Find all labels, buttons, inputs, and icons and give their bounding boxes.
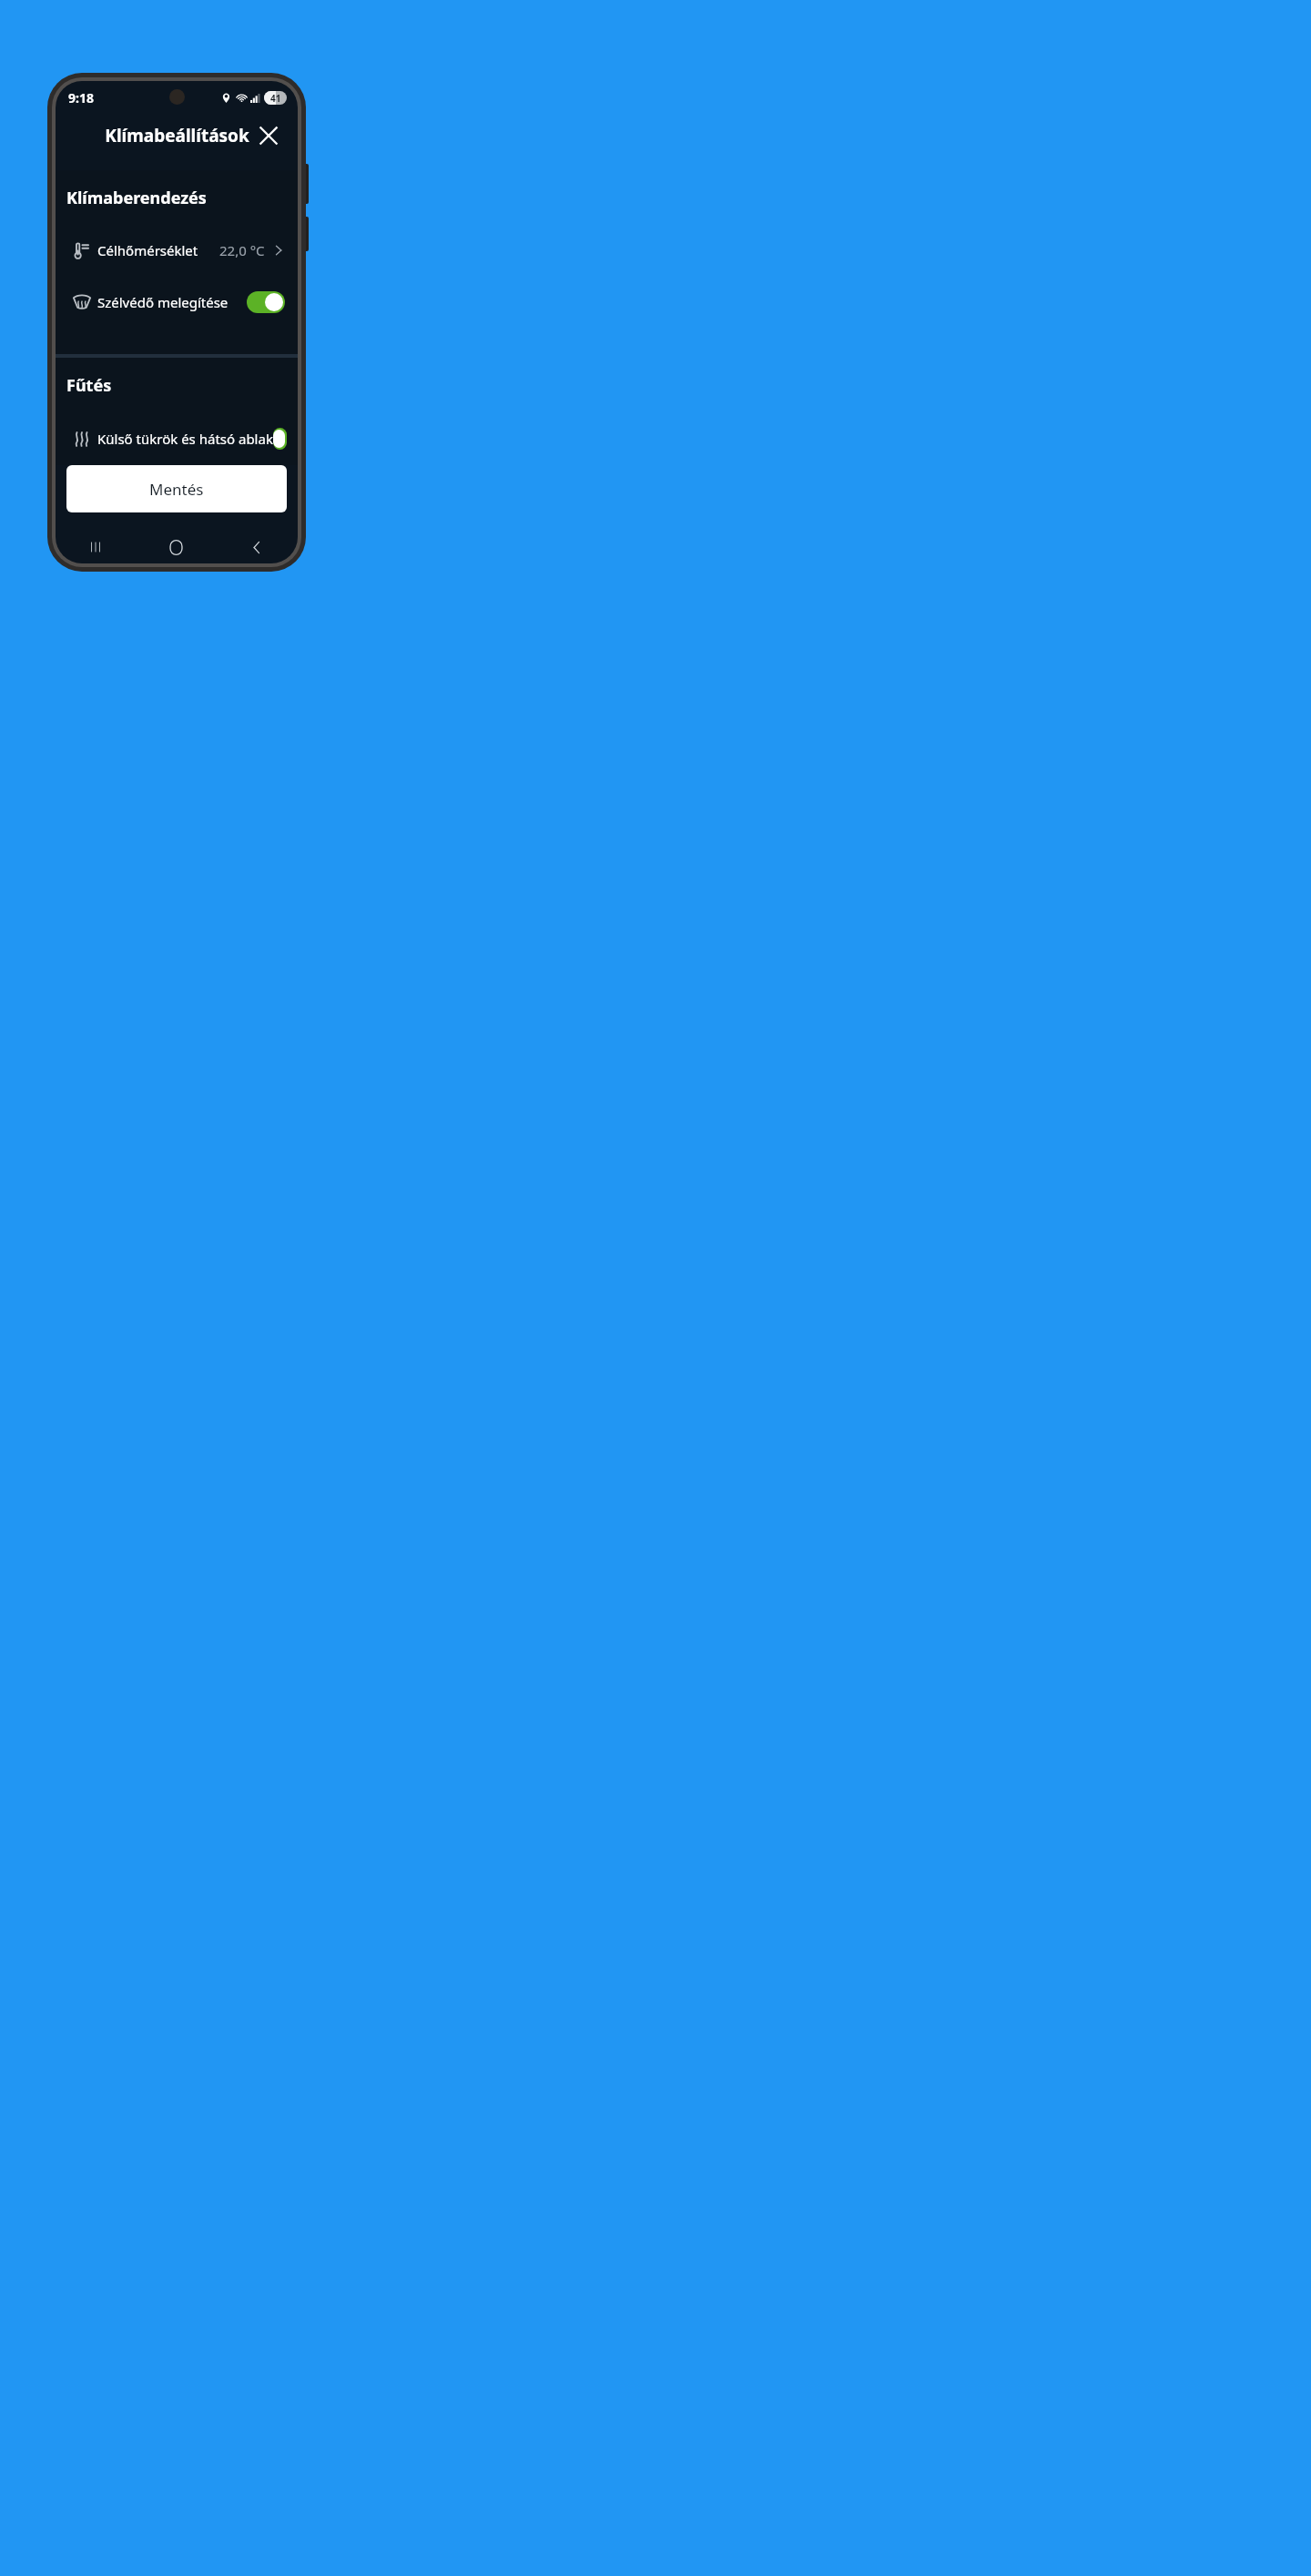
staticText: Klímaberendezés [66, 187, 207, 209]
staticText: Külső tükrök és hátsó ablak [97, 430, 273, 448]
staticText: 41 [270, 92, 281, 105]
button[interactable]: Back [217, 531, 298, 563]
button[interactable]: Close [249, 116, 289, 156]
button[interactable]: Célhőmérséklet [56, 225, 298, 276]
staticText: 22,0 °C [219, 241, 265, 259]
button[interactable]: Mentés [66, 465, 287, 512]
button[interactable]: Home [136, 531, 217, 563]
button[interactable]: Külső tükrök és hátsó ablak [56, 412, 298, 465]
button[interactable]: Toggle [247, 291, 285, 313]
staticText: Szélvédő melegítése [97, 293, 229, 311]
staticText: Fűtés [66, 374, 112, 397]
staticText: Mentés [149, 479, 204, 500]
staticText: Célhőmérséklet [97, 241, 198, 259]
button[interactable]: Szélvédő melegítése [56, 276, 298, 329]
button[interactable]: Toggle [273, 428, 287, 450]
staticText: 9:18 [68, 89, 94, 106]
staticText: Klímabeállítások [105, 124, 249, 147]
button[interactable]: Recents [56, 531, 136, 563]
